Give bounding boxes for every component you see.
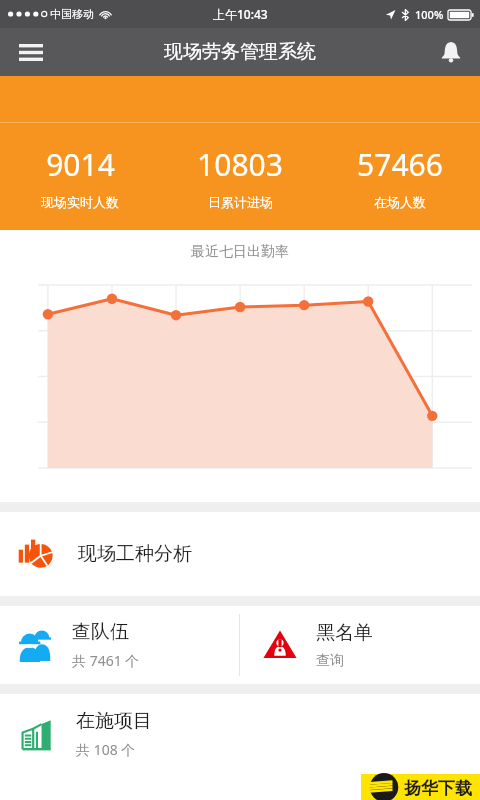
button[interactable]: 9014 (0, 123, 160, 230)
staticText: 10803 (197, 144, 283, 185)
staticText: 57466 (357, 144, 443, 185)
staticText: 扬华下载 (404, 778, 472, 796)
staticText: 在场人数 (374, 194, 426, 210)
staticText: 日累计进场 (208, 194, 273, 210)
other: Work type analysis (18, 536, 54, 572)
staticText: 现场劳务管理系统 (164, 40, 316, 64)
staticText: 100% (415, 7, 444, 22)
staticText: 上午10:43 (213, 6, 268, 22)
button[interactable]: Teams (0, 606, 239, 684)
staticText: 最近七日出勤率 (0, 243, 480, 261)
button[interactable]: Notifications (422, 28, 480, 76)
other: Blacklist (262, 627, 298, 663)
staticText: 黑名单 (316, 621, 373, 645)
other: Teams (16, 626, 54, 664)
staticText: 现场实时人数 (41, 194, 119, 210)
button[interactable]: 57466 (320, 123, 480, 230)
staticText: 共 7461 个 (72, 651, 140, 670)
staticText: 现场工种分析 (78, 542, 192, 566)
button[interactable]: Menu (0, 28, 62, 76)
staticText: 查队伍 (72, 620, 129, 644)
button[interactable]: Active projects (0, 694, 480, 774)
other: Active projects (18, 715, 56, 753)
button[interactable]: 10803 (160, 123, 320, 230)
staticText: 在施项目 (76, 709, 152, 733)
staticText: 9014 (46, 144, 115, 185)
staticText: 共 108 个 (76, 740, 136, 759)
staticText: 查询 (316, 652, 344, 670)
button[interactable]: Work type analysis (0, 512, 480, 596)
staticText: 中国移动 (50, 7, 94, 21)
button[interactable]: Blacklist (240, 606, 480, 684)
